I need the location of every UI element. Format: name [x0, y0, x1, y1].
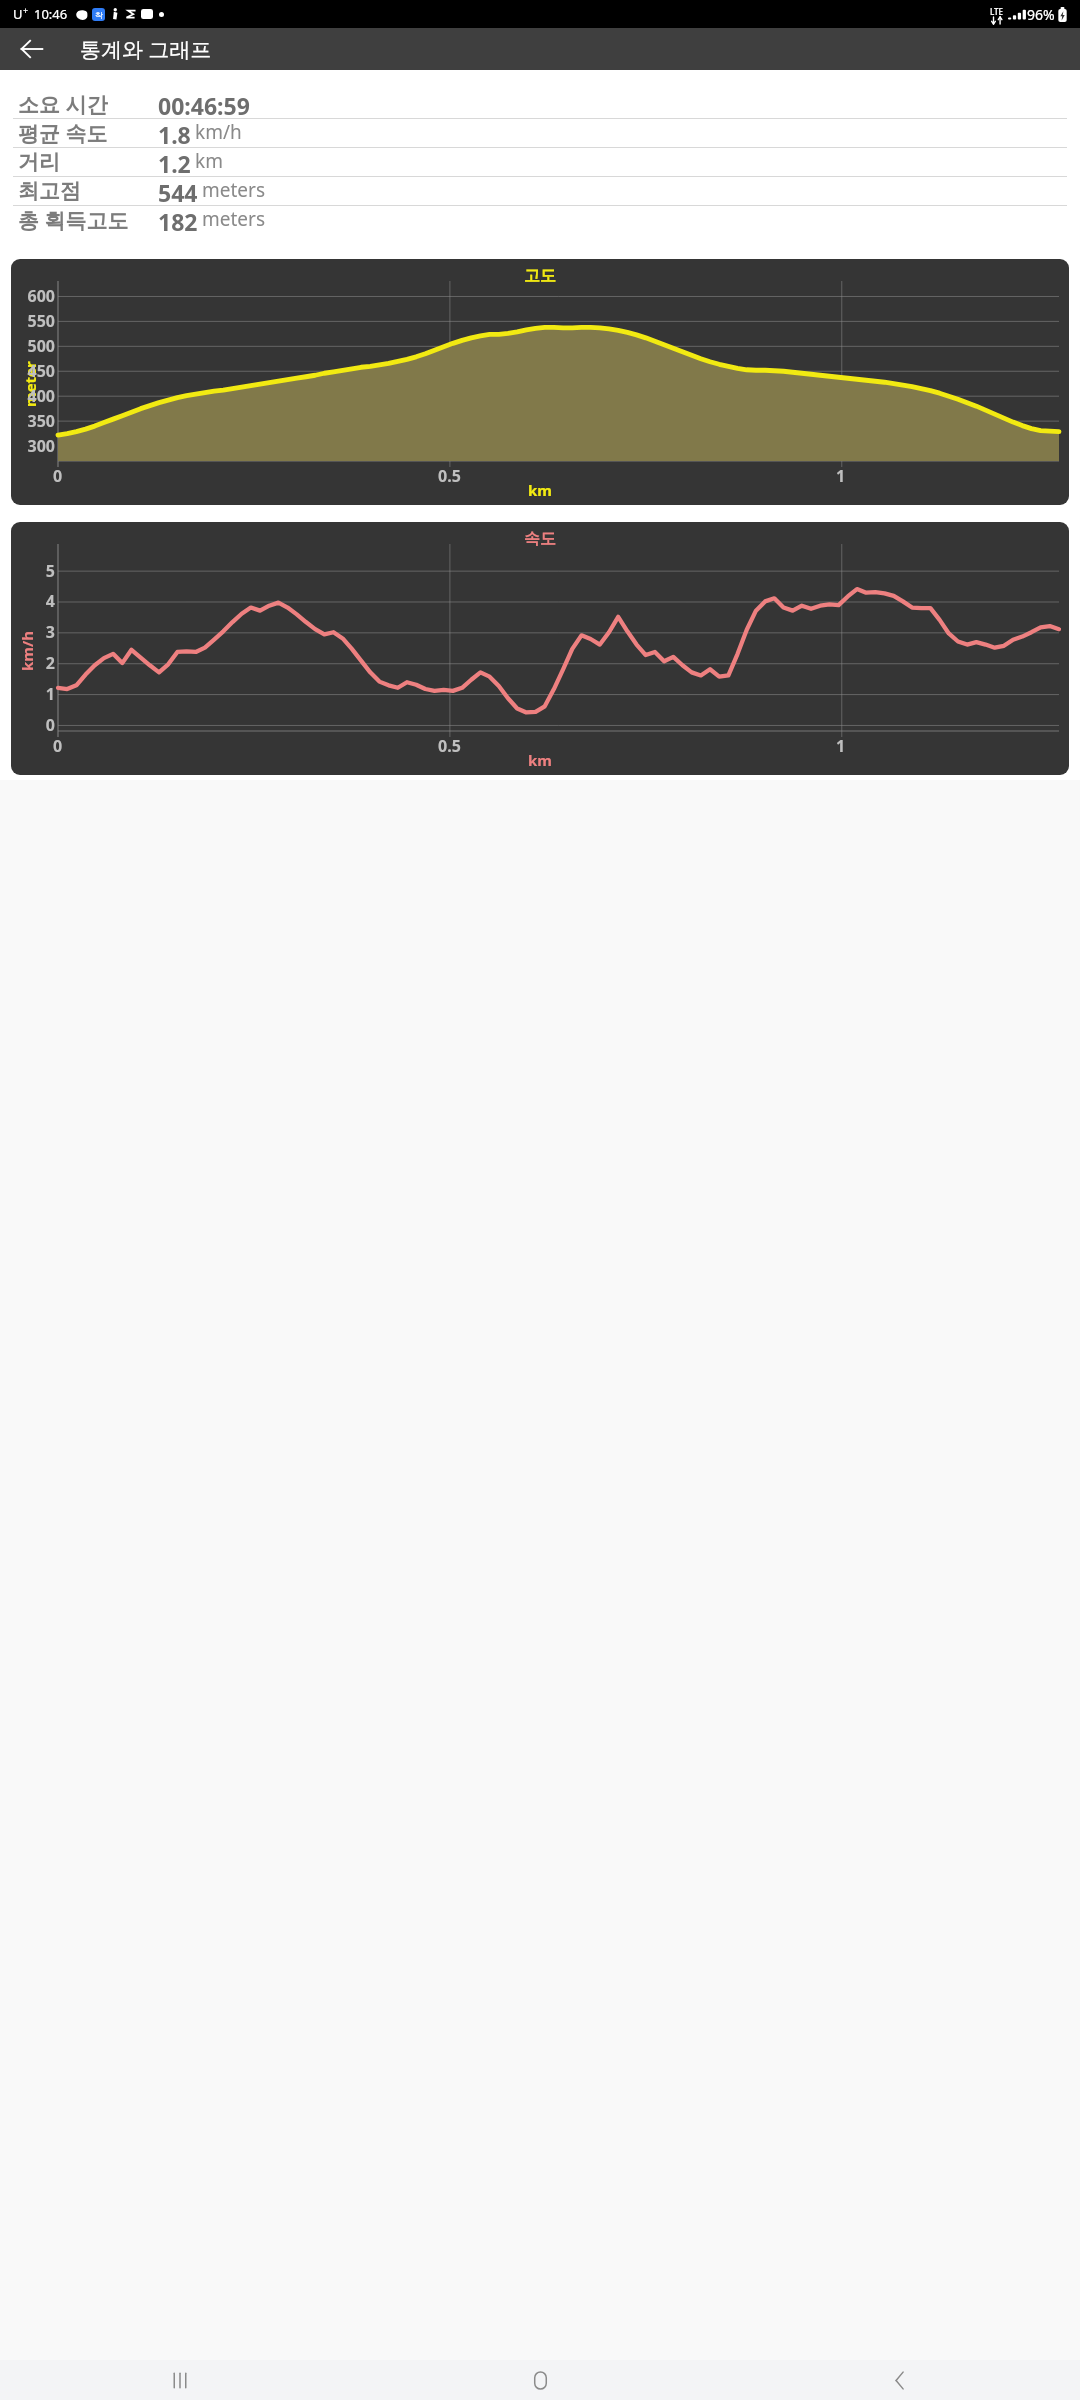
staticText: 450 [17, 360, 55, 382]
staticText: 96% [1027, 5, 1055, 24]
staticText: 1.2 [158, 148, 191, 176]
button[interactable]: 속도 [11, 522, 1069, 775]
staticText: 0 [53, 465, 63, 487]
staticText: 고도 [524, 266, 556, 286]
button[interactable]: Back [720, 2360, 1080, 2400]
staticText: 평균 속도 [18, 119, 158, 147]
staticText: U [13, 5, 23, 23]
staticText: 총 획득고도 [18, 206, 158, 234]
button[interactable]: 최고점 [0, 177, 1080, 205]
staticText: 착 [95, 10, 103, 20]
button[interactable]: 평균 속도 [0, 119, 1080, 147]
staticText: 544 [158, 177, 198, 205]
staticText: 최고점 [18, 178, 158, 204]
button[interactable]: 소요 시간 [0, 90, 1080, 118]
staticText: meters [202, 177, 266, 203]
staticText: 00:46:59 [158, 90, 250, 118]
staticText: meters [202, 206, 266, 232]
staticText: 거리 [18, 149, 158, 175]
button[interactable]: Home [360, 2360, 720, 2400]
staticText: 1 [17, 683, 55, 705]
staticText: 1 [836, 735, 846, 757]
staticText: + [23, 4, 29, 16]
staticText: 4 [17, 590, 55, 612]
staticText: 통계와 그래프 [80, 35, 212, 64]
staticText: km [528, 480, 552, 500]
staticText: 0.5 [438, 465, 461, 487]
button[interactable]: 총 획득고도 [0, 206, 1080, 234]
staticText: 182 [158, 206, 198, 234]
staticText: 300 [17, 435, 55, 457]
staticText: 0 [17, 714, 55, 736]
staticText: 2 [17, 652, 55, 674]
staticText: 600 [17, 285, 55, 307]
staticText: 소요 시간 [18, 90, 158, 118]
staticText: 5 [17, 560, 55, 582]
button[interactable]: 고도 [11, 259, 1069, 505]
staticText: km [528, 750, 552, 770]
button[interactable]: Back [8, 28, 56, 70]
staticText: km/h [17, 631, 37, 671]
staticText: 500 [17, 335, 55, 357]
staticText: km/h [195, 119, 242, 145]
staticText: km [195, 148, 223, 174]
button[interactable]: 거리 [0, 148, 1080, 176]
staticText: 350 [17, 410, 55, 432]
staticText: 10:46 [34, 5, 68, 23]
staticText: 0.5 [438, 735, 461, 757]
staticText: 1 [836, 465, 846, 487]
staticText: 0 [53, 735, 63, 757]
staticText: 3 [17, 621, 55, 643]
staticText: 속도 [524, 529, 556, 549]
staticText: meter [20, 361, 40, 407]
button[interactable]: Recent apps [0, 2360, 360, 2400]
staticText: LTE [990, 6, 1004, 17]
staticText: 1.8 [158, 119, 191, 147]
staticText: 400 [17, 385, 55, 407]
staticText: 550 [17, 310, 55, 332]
